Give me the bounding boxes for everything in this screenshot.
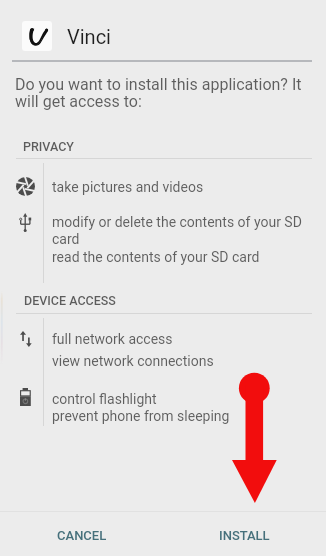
button[interactable]: CANCEL	[0, 513, 163, 556]
staticText: view network connections	[52, 353, 214, 369]
staticText: read the contents of your SD card	[52, 249, 260, 265]
staticText: PRIVACY	[23, 139, 74, 154]
staticText: take pictures and videos	[52, 179, 204, 195]
staticText: Vinci	[67, 25, 111, 48]
staticText: DEVICE ACCESS	[24, 293, 116, 308]
staticText: CANCEL	[57, 528, 107, 543]
staticText: modify or delete the contents of your SD…	[52, 214, 310, 248]
staticText: full network access	[52, 331, 173, 347]
staticText: INSTALL	[219, 528, 270, 543]
staticText: prevent phone from sleeping	[52, 408, 230, 424]
staticText: Do you want to install this application?…	[15, 75, 311, 111]
staticText: control flashlight	[52, 391, 157, 407]
button[interactable]: INSTALL	[163, 513, 326, 556]
